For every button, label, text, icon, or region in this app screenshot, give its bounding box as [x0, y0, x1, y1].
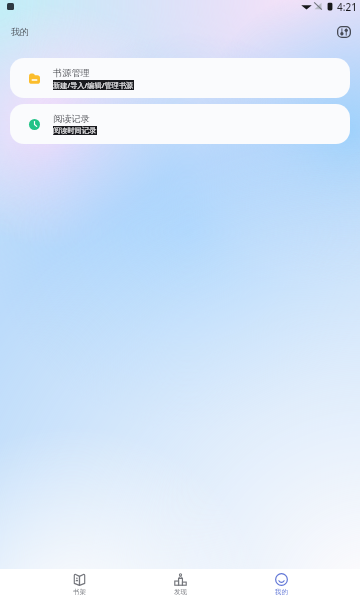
staticText: 4:21: [337, 0, 357, 12]
button[interactable]: 书源管理: [10, 58, 350, 98]
staticText: 发现: [174, 588, 187, 596]
staticText: 我的: [275, 588, 288, 596]
button[interactable]: 阅读记录: [10, 104, 350, 144]
button[interactable]: 设置: [334, 22, 354, 42]
button[interactable]: 发现: [130, 569, 231, 600]
staticText: 我的: [11, 26, 29, 37]
button[interactable]: 书架: [28, 569, 130, 600]
staticText: 阅读时间记录: [53, 126, 97, 135]
staticText: 新建/导入/编辑/管理书源: [53, 80, 134, 90]
button[interactable]: 我的: [231, 569, 332, 600]
staticText: 书源管理: [53, 67, 90, 79]
staticText: 阅读记录: [53, 113, 90, 125]
staticText: 书架: [73, 588, 86, 596]
